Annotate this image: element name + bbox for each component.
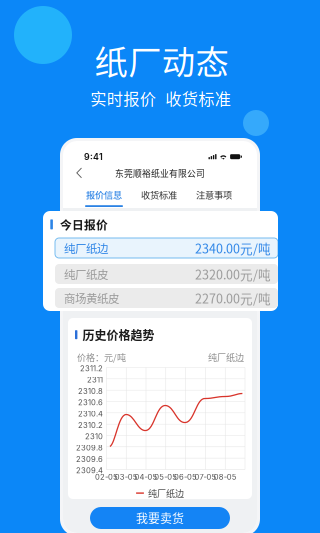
staticText: 东莞顺裕纸业有限公司: [115, 167, 205, 179]
staticText: 纯厂纸边: [148, 486, 184, 500]
staticText: 注意事项: [196, 188, 232, 201]
staticText: 02-05: [95, 472, 118, 482]
staticText: 08-05: [214, 472, 237, 482]
button[interactable]: 纯厂纸皮: [55, 264, 278, 284]
staticText: 03-05: [115, 472, 138, 482]
staticText: 2310.2: [78, 421, 103, 430]
staticText: 价格：元/吨: [77, 350, 126, 363]
button[interactable]: 报价信息: [85, 184, 123, 208]
staticText: 商场黄纸皮: [64, 290, 119, 306]
staticText: 04-05: [134, 472, 157, 482]
button[interactable]: 商场黄纸皮: [55, 288, 278, 308]
staticText: 2310.6: [78, 398, 103, 407]
staticText: 2320.00元/吨: [195, 265, 271, 283]
staticText: 2309.4: [76, 466, 103, 475]
staticText: 2309.6: [76, 454, 103, 464]
button[interactable]: 注意事项: [195, 184, 233, 208]
staticText: 05-05: [154, 472, 177, 482]
staticText: 9:41: [84, 151, 103, 162]
staticText: 2340.00元/吨: [195, 239, 271, 257]
staticText: 2310.8: [78, 387, 103, 396]
staticText: 2270.00元/吨: [195, 289, 271, 307]
staticText: 纯厂纸边: [64, 240, 108, 256]
staticText: 2311.2: [80, 364, 103, 373]
staticText: 今日报价: [60, 216, 108, 233]
staticText: 报价信息: [86, 188, 122, 201]
staticText: 06-05: [174, 472, 197, 482]
staticText: 历史价格趋势: [82, 326, 154, 343]
staticText: 纯厂纸皮: [64, 266, 108, 282]
staticText: 2311: [87, 375, 103, 384]
staticText: 实时报价 收货标准: [90, 86, 231, 110]
button[interactable]: 收货标准: [140, 184, 178, 208]
button[interactable]: Back: [63, 162, 90, 183]
staticText: 2310.4: [78, 409, 103, 418]
staticText: 07-05: [194, 472, 216, 482]
button[interactable]: 我要卖货: [90, 507, 230, 529]
staticText: 我要卖货: [136, 509, 184, 527]
staticText: 收货标准: [141, 188, 177, 201]
staticText: 2309.8: [76, 443, 103, 452]
staticText: 纯厂纸边: [208, 350, 244, 363]
staticText: 2310: [85, 432, 103, 441]
button[interactable]: 纯厂纸边: [55, 238, 278, 258]
staticText: 纸厂动态: [95, 36, 228, 84]
